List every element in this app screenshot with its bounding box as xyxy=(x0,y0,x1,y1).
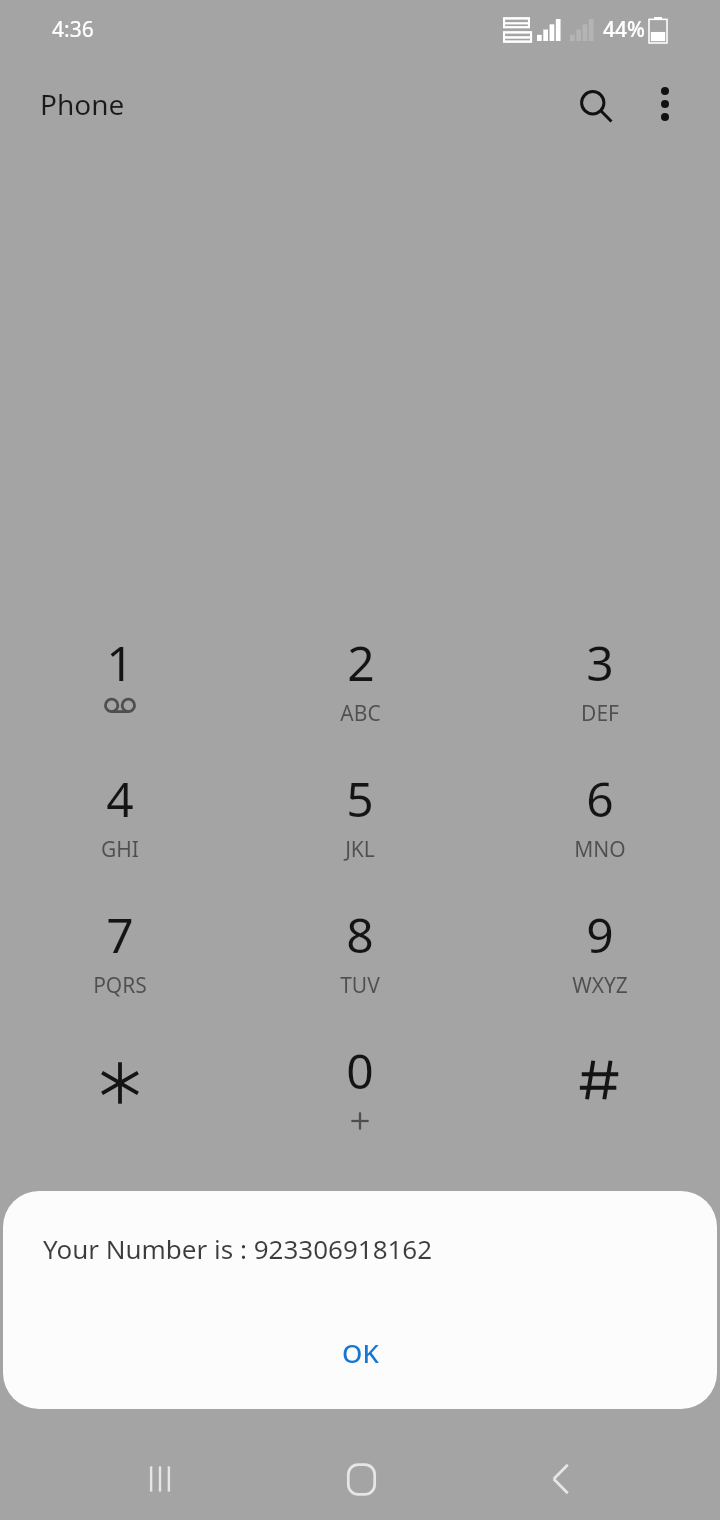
staticText: 7 xyxy=(106,902,134,967)
staticText: MNO xyxy=(574,835,626,864)
button[interactable] xyxy=(0,1026,240,1162)
staticText: GHI xyxy=(101,835,139,864)
button[interactable]: Home xyxy=(321,1438,401,1520)
staticText: 4 xyxy=(106,766,134,831)
staticText: DEF xyxy=(581,699,619,728)
button[interactable]: 1 xyxy=(0,618,240,754)
button[interactable]: 5 xyxy=(240,754,480,890)
staticText: JKL xyxy=(345,835,375,864)
button[interactable]: 7 xyxy=(0,890,240,1026)
staticText: OK xyxy=(342,1335,379,1370)
staticText: 6 xyxy=(586,766,614,831)
staticText: 1 xyxy=(106,630,134,695)
button[interactable]: Recents xyxy=(120,1438,200,1520)
staticText: 0 xyxy=(346,1038,374,1103)
button[interactable]: 6 xyxy=(480,754,720,890)
staticText: PQRS xyxy=(93,971,147,1000)
button[interactable]: 4 xyxy=(0,754,240,890)
staticText: ABC xyxy=(340,699,381,728)
button[interactable]: 0 xyxy=(240,1026,480,1162)
staticText: 4:36 xyxy=(52,15,94,44)
staticText: 9 xyxy=(586,902,614,967)
button[interactable]: OK xyxy=(3,1311,717,1393)
button[interactable]: More options xyxy=(637,76,693,132)
staticText: TUV xyxy=(340,971,380,1000)
staticText: Phone xyxy=(40,85,125,123)
button[interactable]: Search xyxy=(566,76,626,136)
button[interactable] xyxy=(480,1026,720,1162)
button[interactable]: 9 xyxy=(480,890,720,1026)
button[interactable]: 2 xyxy=(240,618,480,754)
staticText: WXYZ xyxy=(572,971,628,1000)
staticText: Your Number is : 923306918162 xyxy=(43,1231,433,1266)
staticText: 3 xyxy=(586,630,614,695)
staticText: 44% xyxy=(603,15,645,44)
staticText: 5 xyxy=(346,766,374,831)
button[interactable]: 3 xyxy=(480,618,720,754)
staticText: 8 xyxy=(346,902,374,967)
button[interactable]: Back xyxy=(521,1438,601,1520)
button[interactable]: 8 xyxy=(240,890,480,1026)
staticText: 2 xyxy=(347,630,375,695)
